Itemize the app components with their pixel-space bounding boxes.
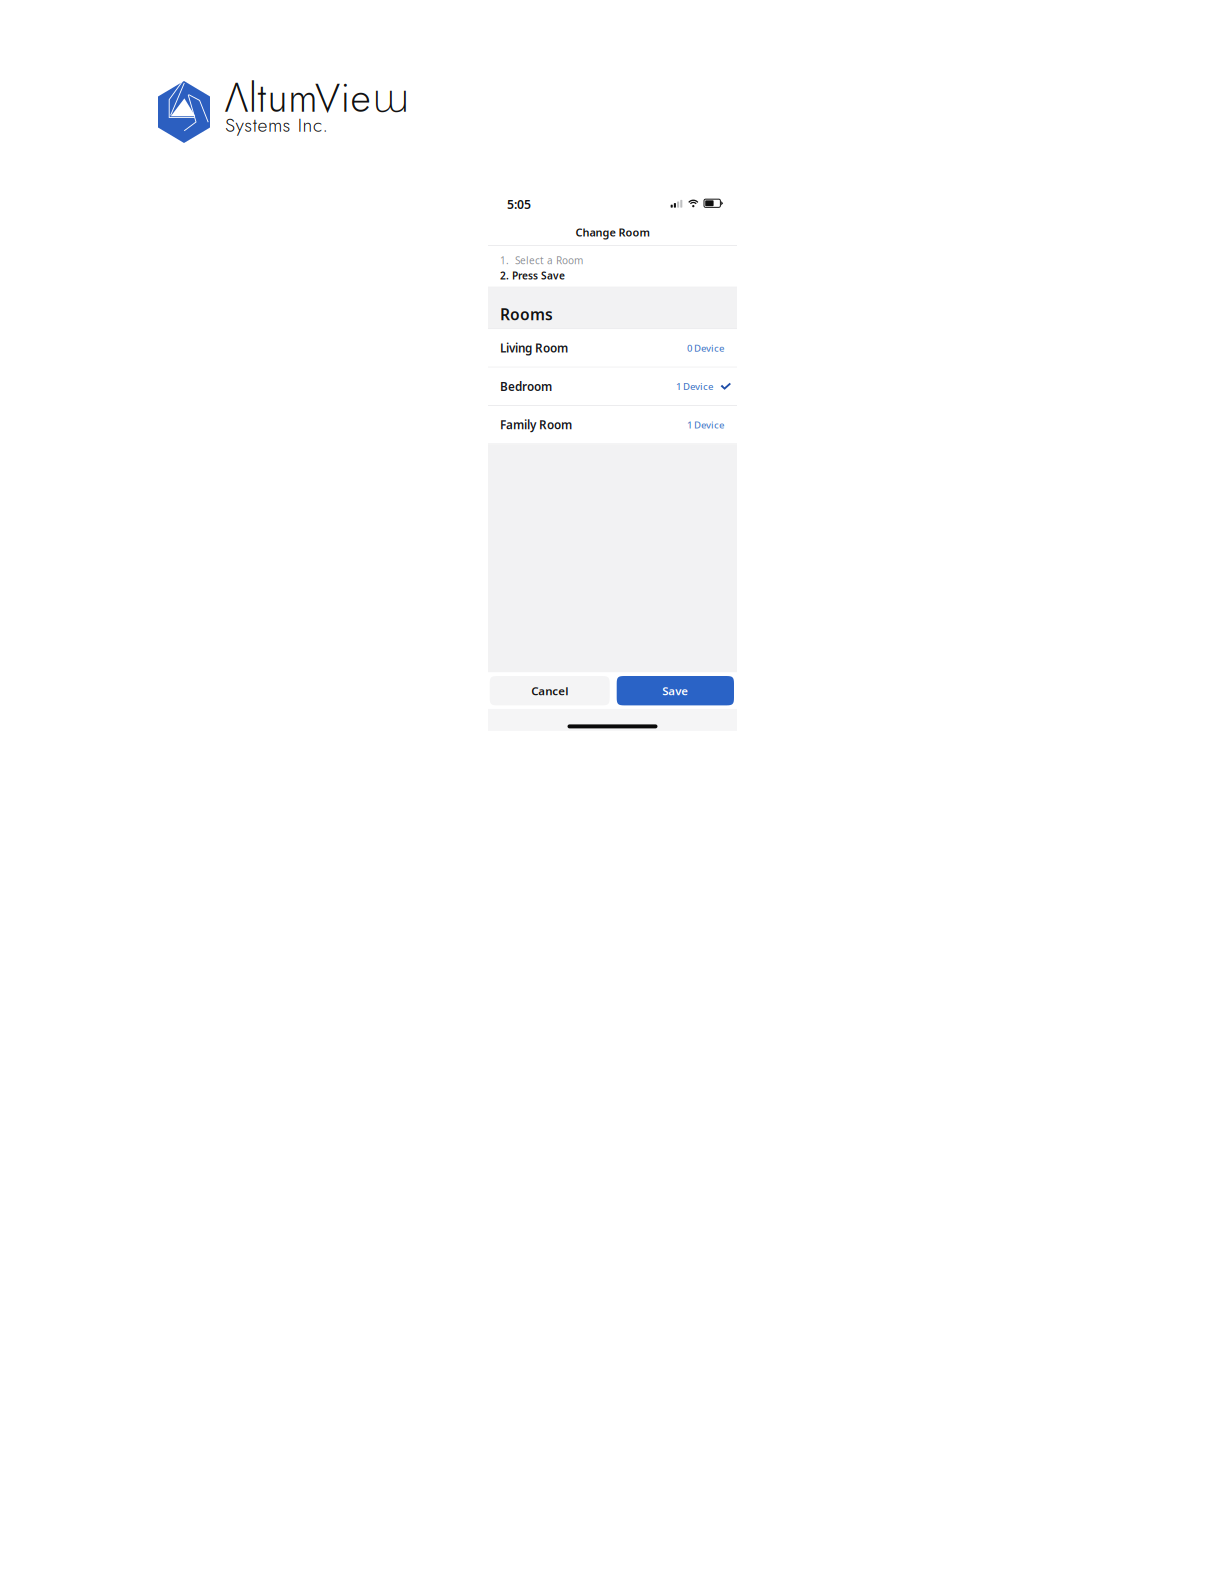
button[interactable]: Living Room — [488, 329, 737, 367]
staticText: Change Room — [575, 225, 649, 240]
staticText: Living Room — [500, 340, 568, 356]
staticText: 1 Device — [687, 418, 725, 431]
staticText: 1. Select a Room — [500, 254, 583, 267]
staticText: Save — [662, 683, 688, 698]
staticText: 1 Device — [676, 380, 714, 393]
button[interactable]: Bedroom — [488, 368, 737, 405]
button[interactable]: Family Room — [488, 406, 737, 444]
button[interactable]: Save — [617, 676, 734, 705]
staticText: 2. Press Save — [500, 269, 565, 283]
staticText: Family Room — [500, 417, 572, 433]
staticText: Rooms — [500, 304, 553, 325]
staticText: Systems Inc. — [225, 111, 328, 139]
staticText: 0 Device — [687, 341, 725, 354]
button[interactable]: Cancel — [490, 676, 610, 705]
staticText: ΛltumVieա — [225, 69, 409, 126]
staticText: Bedroom — [500, 378, 552, 394]
staticText: 5:05 — [507, 196, 531, 212]
staticText: Cancel — [531, 683, 568, 698]
